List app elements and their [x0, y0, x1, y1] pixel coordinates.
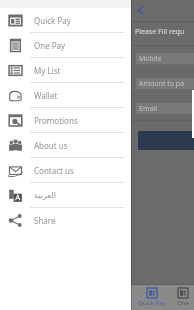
- button[interactable]: العربية: [0, 183, 131, 207]
- staticText: One: [177, 299, 189, 307]
- staticText: Email: [139, 104, 157, 114]
- staticText: Quick Pay: [138, 299, 166, 307]
- button[interactable]: Submit: [138, 131, 194, 150]
- staticText: Contact us: [34, 165, 74, 176]
- staticText: Mobile: [139, 54, 162, 64]
- staticText: Amount to pa: [139, 79, 185, 89]
- staticText: Quick Pay: [34, 15, 71, 26]
- button[interactable]: Quick Pay: [131, 285, 172, 310]
- button[interactable]: One Pay: [0, 33, 131, 57]
- button[interactable]: Mobile: [136, 53, 194, 64]
- staticText: My List: [34, 65, 61, 76]
- button[interactable]: Email: [136, 103, 194, 114]
- button[interactable]: Promotions: [0, 108, 131, 132]
- button[interactable]: Wallet: [0, 83, 131, 107]
- staticText: About us: [34, 140, 68, 151]
- staticText: Wallet: [34, 90, 58, 101]
- button[interactable]: Contact us: [0, 158, 131, 182]
- staticText: Share: [34, 215, 56, 226]
- staticText: One Pay: [34, 40, 66, 51]
- button[interactable]: One: [172, 285, 194, 310]
- staticText: Promotions: [34, 115, 78, 126]
- button[interactable]: About us: [0, 133, 131, 157]
- button[interactable]: Quick Pay: [0, 8, 131, 32]
- button[interactable]: Share: [0, 208, 131, 232]
- button[interactable]: My List: [0, 58, 131, 82]
- button[interactable]: Back: [131, 0, 194, 21]
- staticText: Please Fill requ: [135, 27, 185, 37]
- button[interactable]: Amount to pa: [136, 78, 194, 89]
- staticText: العربية: [34, 191, 56, 200]
